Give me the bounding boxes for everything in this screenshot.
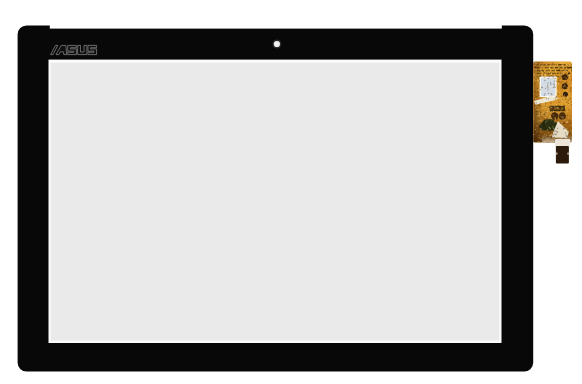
button[interactable]: ASUS ZenPad 10 tablet touch screen digit…	[0, 0, 582, 384]
